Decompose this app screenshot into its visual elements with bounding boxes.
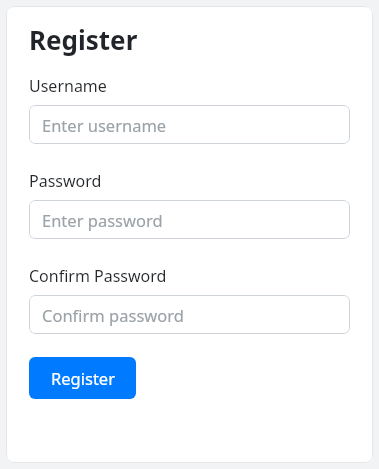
button[interactable]: Enter username [29,105,350,144]
staticText: Confirm password [42,304,184,326]
staticText: Register [29,22,138,57]
button[interactable]: Enter password [29,200,350,239]
staticText: Password [29,170,102,192]
button[interactable]: Register [29,357,136,399]
button[interactable]: Confirm password [29,295,350,334]
staticText: Confirm Password [29,265,167,287]
staticText: Enter username [42,114,167,136]
staticText: Register [51,367,115,389]
staticText: Username [29,75,107,97]
staticText: Enter password [42,209,163,231]
